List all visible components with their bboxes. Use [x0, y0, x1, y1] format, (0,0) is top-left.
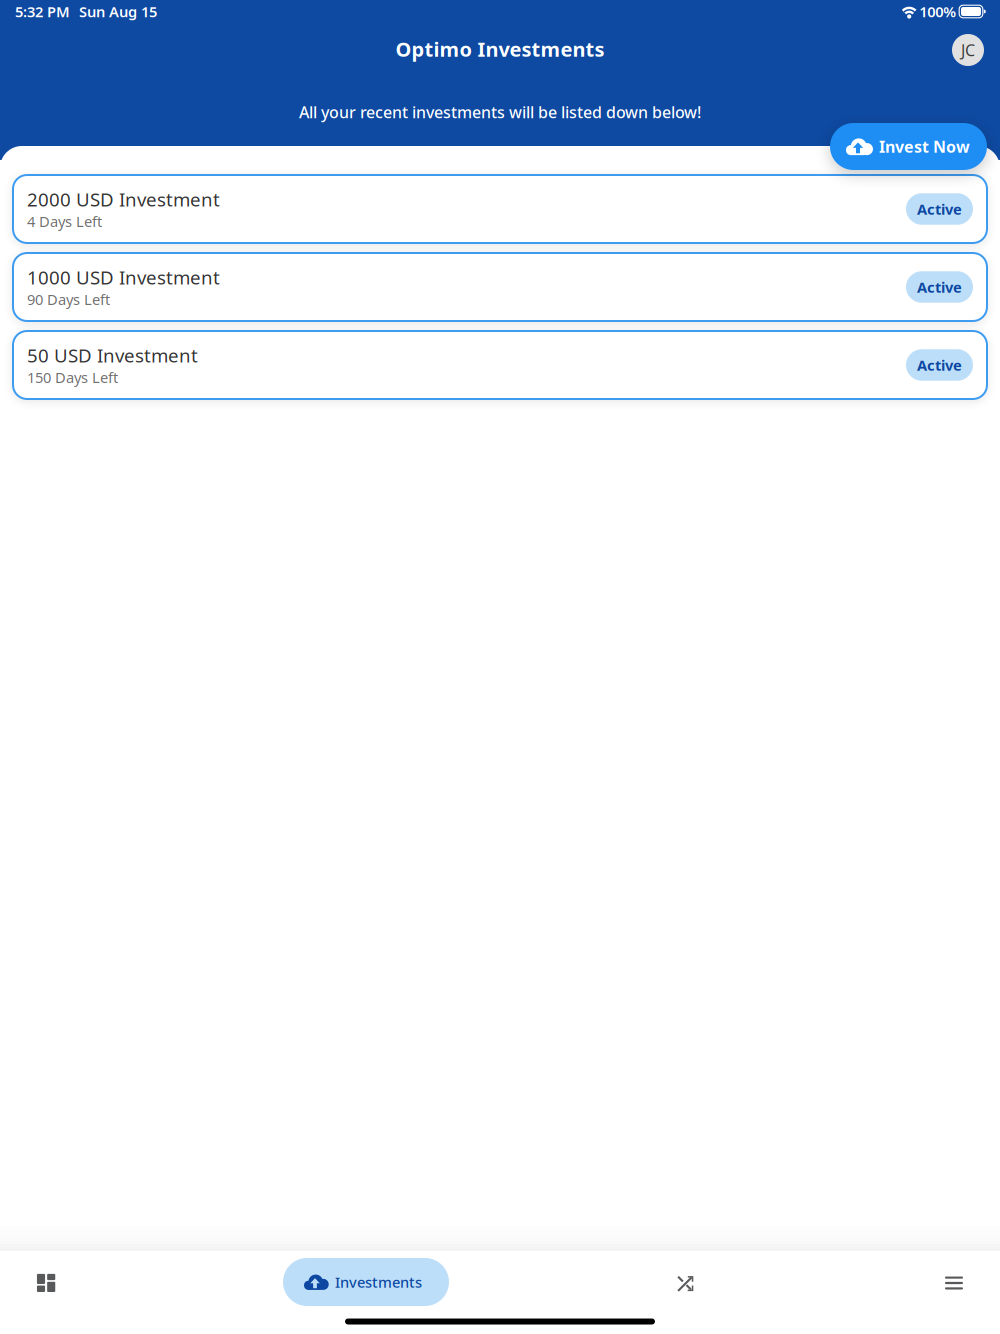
staticText: 100% — [919, 2, 956, 21]
staticText: 2000 USD Investment — [27, 187, 220, 212]
button[interactable]: Investments — [279, 1256, 445, 1304]
button[interactable]: Profile — [952, 34, 984, 66]
staticText: 1000 USD Investment — [27, 265, 220, 290]
button[interactable]: Invest Now — [830, 123, 987, 170]
staticText: All your recent investments will be list… — [299, 101, 701, 123]
staticText: Active — [917, 355, 962, 375]
button[interactable]: Menu — [921, 1251, 993, 1309]
staticText: Active — [917, 199, 962, 219]
staticText: 150 Days Left — [27, 368, 118, 387]
staticText: Invest Now — [879, 136, 970, 157]
staticText: 5:32 PM — [15, 2, 70, 21]
staticText: Sun Aug 15 — [79, 2, 157, 21]
staticText: Investments — [335, 1272, 422, 1292]
staticText: JC — [961, 39, 975, 61]
staticText: Optimo Investments — [395, 36, 604, 62]
button[interactable]: Transfers — [647, 1251, 719, 1309]
button[interactable]: 1000 USD Investment — [13, 253, 987, 321]
staticText: 4 Days Left — [27, 212, 102, 231]
button[interactable]: 50 USD Investment — [13, 331, 987, 399]
staticText: 50 USD Investment — [27, 343, 198, 368]
staticText: Active — [917, 277, 962, 297]
button[interactable]: 2000 USD Investment — [13, 175, 987, 243]
staticText: 90 Days Left — [27, 290, 110, 309]
button[interactable]: Dashboard — [5, 1251, 77, 1309]
